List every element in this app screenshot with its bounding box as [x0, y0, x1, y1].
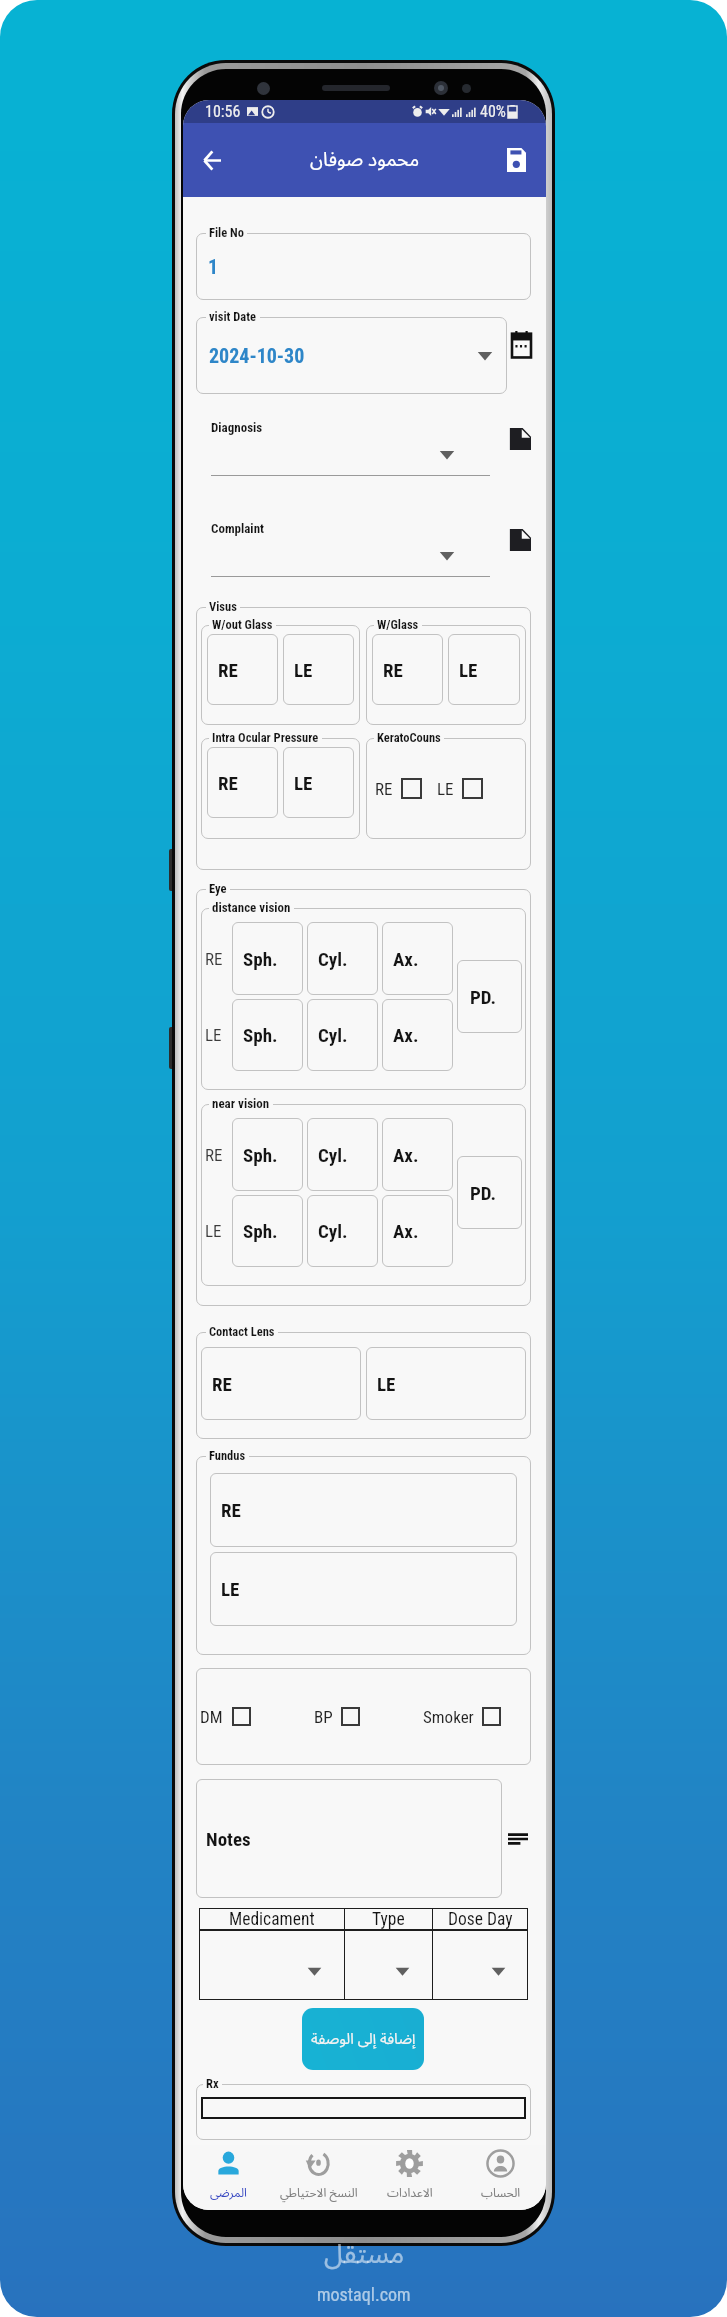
button[interactable]: RE [207, 747, 278, 818]
button[interactable]: المرضى [183, 2145, 273, 2210]
button[interactable] [433, 1930, 528, 2000]
staticText: 2024-10-30 [209, 344, 305, 367]
button[interactable]: LE [366, 1347, 526, 1420]
staticText: LE [294, 772, 313, 794]
button[interactable]: Open Diagnosis list [509, 428, 531, 450]
button[interactable]: Cyl. [307, 1195, 378, 1267]
button[interactable]: الحساب [455, 2145, 546, 2210]
button[interactable]: Type [345, 1908, 432, 1930]
staticText: Eye [209, 881, 227, 896]
button[interactable]: PD. [457, 960, 522, 1033]
staticText: النسخ الاحتياطي [280, 2181, 358, 2206]
staticText: Cyl. [318, 1220, 348, 1242]
button[interactable]: Dose Day [433, 1908, 528, 1930]
button[interactable]: الاعدادات [364, 2145, 455, 2210]
button[interactable]: إضافة إلى الوصفة [302, 2008, 424, 2070]
staticText: المرضى [210, 2181, 247, 2206]
button[interactable]: checkbox [462, 778, 483, 799]
staticText: RE [205, 1145, 232, 1165]
button[interactable] [199, 1930, 344, 2000]
staticText: RE [375, 779, 393, 799]
button[interactable]: Notes list [508, 1829, 528, 1849]
staticText: Sph. [243, 1144, 278, 1166]
button[interactable]: Cyl. [307, 999, 378, 1071]
button[interactable]: Sph. [232, 922, 303, 995]
staticText: File No [209, 225, 244, 240]
staticText: RE [221, 1499, 241, 1521]
staticText: 10:56 [205, 102, 241, 121]
staticText: Contact Lens [209, 1324, 275, 1339]
staticText: PD. [470, 986, 496, 1008]
staticText: مستقل [324, 2226, 405, 2283]
button[interactable]: RE [372, 634, 443, 705]
button[interactable]: Sph. [232, 1195, 303, 1267]
button[interactable]: RE [201, 1347, 361, 1420]
staticText: Ax. [393, 948, 419, 970]
button[interactable] [201, 2097, 526, 2119]
button[interactable]: Cyl. [307, 922, 378, 995]
staticText: Notes [206, 1828, 251, 1850]
staticText: Dose Day [448, 1909, 513, 1930]
staticText: LE [459, 659, 478, 681]
staticText: BP [314, 1707, 333, 1727]
staticText: KeratoCouns [377, 730, 441, 745]
button[interactable] [196, 435, 490, 475]
staticText: الحساب [481, 2181, 521, 2206]
button[interactable]: 1 [196, 233, 531, 300]
staticText: W/Glass [377, 617, 419, 632]
staticText: mostaql.com [317, 2284, 411, 2305]
staticText: محمود صوفان [310, 140, 420, 180]
button[interactable]: RE [210, 1473, 517, 1547]
staticText: إضافة إلى الوصفة [311, 2023, 416, 2055]
staticText: DM [200, 1707, 223, 1727]
button[interactable]: Open Complaint list [509, 529, 531, 551]
button[interactable]: checkbox [482, 1707, 501, 1726]
staticText: LE [221, 1578, 240, 1600]
staticText: Cyl. [318, 948, 348, 970]
staticText: LE [205, 1221, 232, 1241]
button[interactable]: LE [283, 634, 354, 705]
button[interactable]: Ax. [382, 1118, 453, 1191]
staticText: near vision [212, 1096, 270, 1111]
button[interactable]: checkbox [232, 1707, 251, 1726]
staticText: Fundus [209, 1448, 246, 1463]
button[interactable]: Sph. [232, 999, 303, 1071]
button[interactable]: Ax. [382, 1195, 453, 1267]
button[interactable]: النسخ الاحتياطي [273, 2145, 364, 2210]
staticText: Diagnosis [211, 420, 263, 435]
staticText: RE [218, 659, 238, 681]
button[interactable]: Back [191, 139, 233, 181]
button[interactable]: Ax. [382, 922, 453, 995]
button[interactable]: 2024-10-30 [196, 317, 507, 394]
staticText: Complaint [211, 521, 265, 536]
button[interactable]: LE [210, 1552, 517, 1626]
staticText: Intra Ocular Pressure [212, 730, 319, 745]
staticText: distance vision [212, 900, 291, 915]
button[interactable]: Save [499, 143, 533, 177]
staticText: Sph. [243, 1220, 278, 1242]
button[interactable]: RE [207, 634, 278, 705]
staticText: RE [218, 772, 238, 794]
button[interactable]: Cyl. [307, 1118, 378, 1191]
staticText: W/out Glass [212, 617, 273, 632]
button[interactable]: Pick date [512, 331, 531, 358]
button[interactable]: Ax. [382, 999, 453, 1071]
button[interactable] [345, 1930, 432, 2000]
button[interactable] [196, 536, 490, 576]
staticText: LE [437, 779, 454, 799]
staticText: Sph. [243, 948, 278, 970]
button[interactable]: LE [448, 634, 520, 705]
button[interactable]: Notes [196, 1779, 502, 1898]
staticText: Ax. [393, 1220, 419, 1242]
staticText: RE [383, 659, 403, 681]
staticText: PD. [470, 1182, 496, 1204]
staticText: Ax. [393, 1024, 419, 1046]
button[interactable]: checkbox [341, 1707, 360, 1726]
button[interactable]: Medicament [199, 1908, 344, 1930]
button[interactable]: Sph. [232, 1118, 303, 1191]
button[interactable]: checkbox [401, 778, 422, 799]
button[interactable]: LE [283, 747, 354, 818]
button[interactable]: PD. [457, 1156, 522, 1229]
staticText: الاعدادات [387, 2181, 433, 2206]
staticText: visit Date [209, 309, 257, 324]
